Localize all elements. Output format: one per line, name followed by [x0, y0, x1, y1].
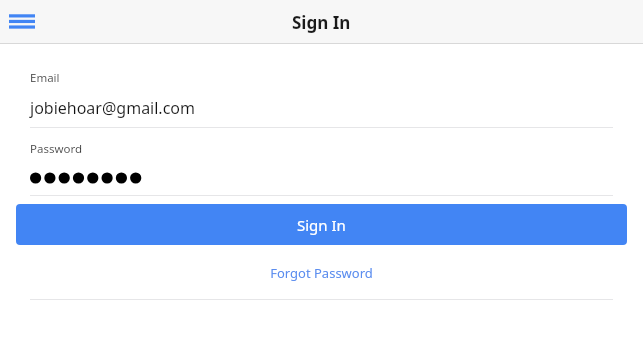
staticText: Email: [30, 70, 60, 86]
staticText: Forgot Password: [270, 264, 373, 282]
staticText: jobiehoar@gmail.com: [30, 97, 195, 119]
button[interactable]: Open navigation menu: [0, 0, 44, 44]
staticText: Sign In: [292, 11, 351, 34]
staticText: Sign In: [297, 215, 346, 235]
button[interactable]: Forgot Password: [0, 259, 643, 287]
button[interactable]: Sign In: [16, 204, 627, 245]
staticText: Password: [30, 141, 83, 157]
button[interactable]: Password field: [30, 165, 613, 191]
button[interactable]: jobiehoar@gmail.com: [30, 96, 613, 120]
